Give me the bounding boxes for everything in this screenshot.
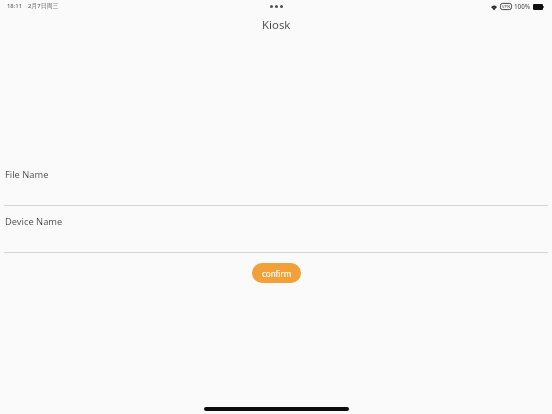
button[interactable]: File Name	[0, 160, 552, 206]
staticText: 100%	[514, 2, 531, 11]
other: Battery full	[533, 4, 544, 10]
other: Wi-Fi connected	[491, 4, 497, 10]
staticText: 18:11	[7, 2, 23, 10]
staticText: Device Name	[5, 215, 63, 228]
staticText: 2月7日周三	[28, 2, 59, 10]
staticText: Kiosk	[262, 17, 291, 33]
staticText: confirm	[262, 268, 292, 279]
staticText: File Name	[5, 168, 49, 181]
other: VPN active	[500, 3, 512, 10]
button[interactable]: confirm	[252, 263, 301, 283]
staticText: VPN	[502, 4, 511, 9]
button[interactable]: Device Name	[0, 207, 552, 253]
